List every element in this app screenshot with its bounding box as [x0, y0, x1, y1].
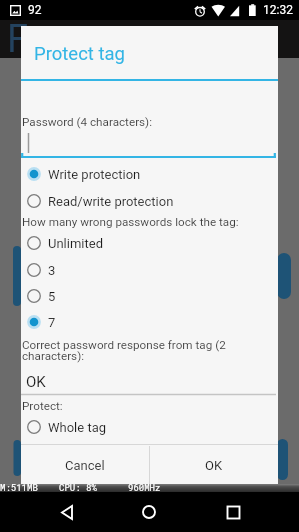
button[interactable]: 7: [21, 309, 278, 335]
staticText: Correct password response from tag (2 ch…: [22, 338, 226, 363]
button[interactable]: [21, 132, 278, 159]
staticText: 3: [48, 263, 56, 278]
staticText: OK: [205, 458, 223, 473]
staticText: Protect:: [22, 399, 63, 413]
staticText: OK: [26, 373, 46, 391]
button[interactable]: Read/write protection: [21, 188, 278, 214]
staticText: 960MHz: [128, 482, 161, 494]
button[interactable]: Cancel: [21, 446, 149, 485]
button[interactable]: 5: [21, 283, 278, 309]
staticText: Whole tag: [48, 420, 107, 435]
staticText: CPU: 8%: [59, 482, 97, 494]
staticText: Cancel: [65, 458, 105, 473]
staticText: Unlimited: [48, 236, 103, 251]
staticText: F: [7, 17, 29, 55]
staticText: How many wrong passwords lock the tag:: [22, 215, 239, 229]
button[interactable]: 3: [21, 257, 278, 283]
button[interactable]: OK: [150, 446, 278, 485]
button[interactable]: Protect tag: [21, 26, 278, 79]
button[interactable]: Home: [121, 495, 177, 529]
button[interactable]: Recent apps: [205, 495, 261, 529]
staticText: Password (4 characters):: [22, 115, 153, 129]
staticText: Write protection: [48, 167, 141, 182]
staticText: 92: [28, 3, 42, 17]
staticText: 12:32: [263, 3, 293, 17]
button[interactable]: OK: [21, 372, 278, 397]
staticText: 7: [48, 315, 56, 330]
button[interactable]: Whole tag: [21, 414, 278, 440]
staticText: M:511MB: [0, 482, 38, 494]
staticText: Protect tag: [34, 43, 126, 65]
staticText: 5: [48, 289, 56, 304]
button[interactable]: Unlimited: [21, 230, 278, 256]
button[interactable]: Write protection: [21, 161, 278, 187]
staticText: Read/write protection: [48, 194, 174, 209]
button[interactable]: Back: [39, 495, 95, 529]
